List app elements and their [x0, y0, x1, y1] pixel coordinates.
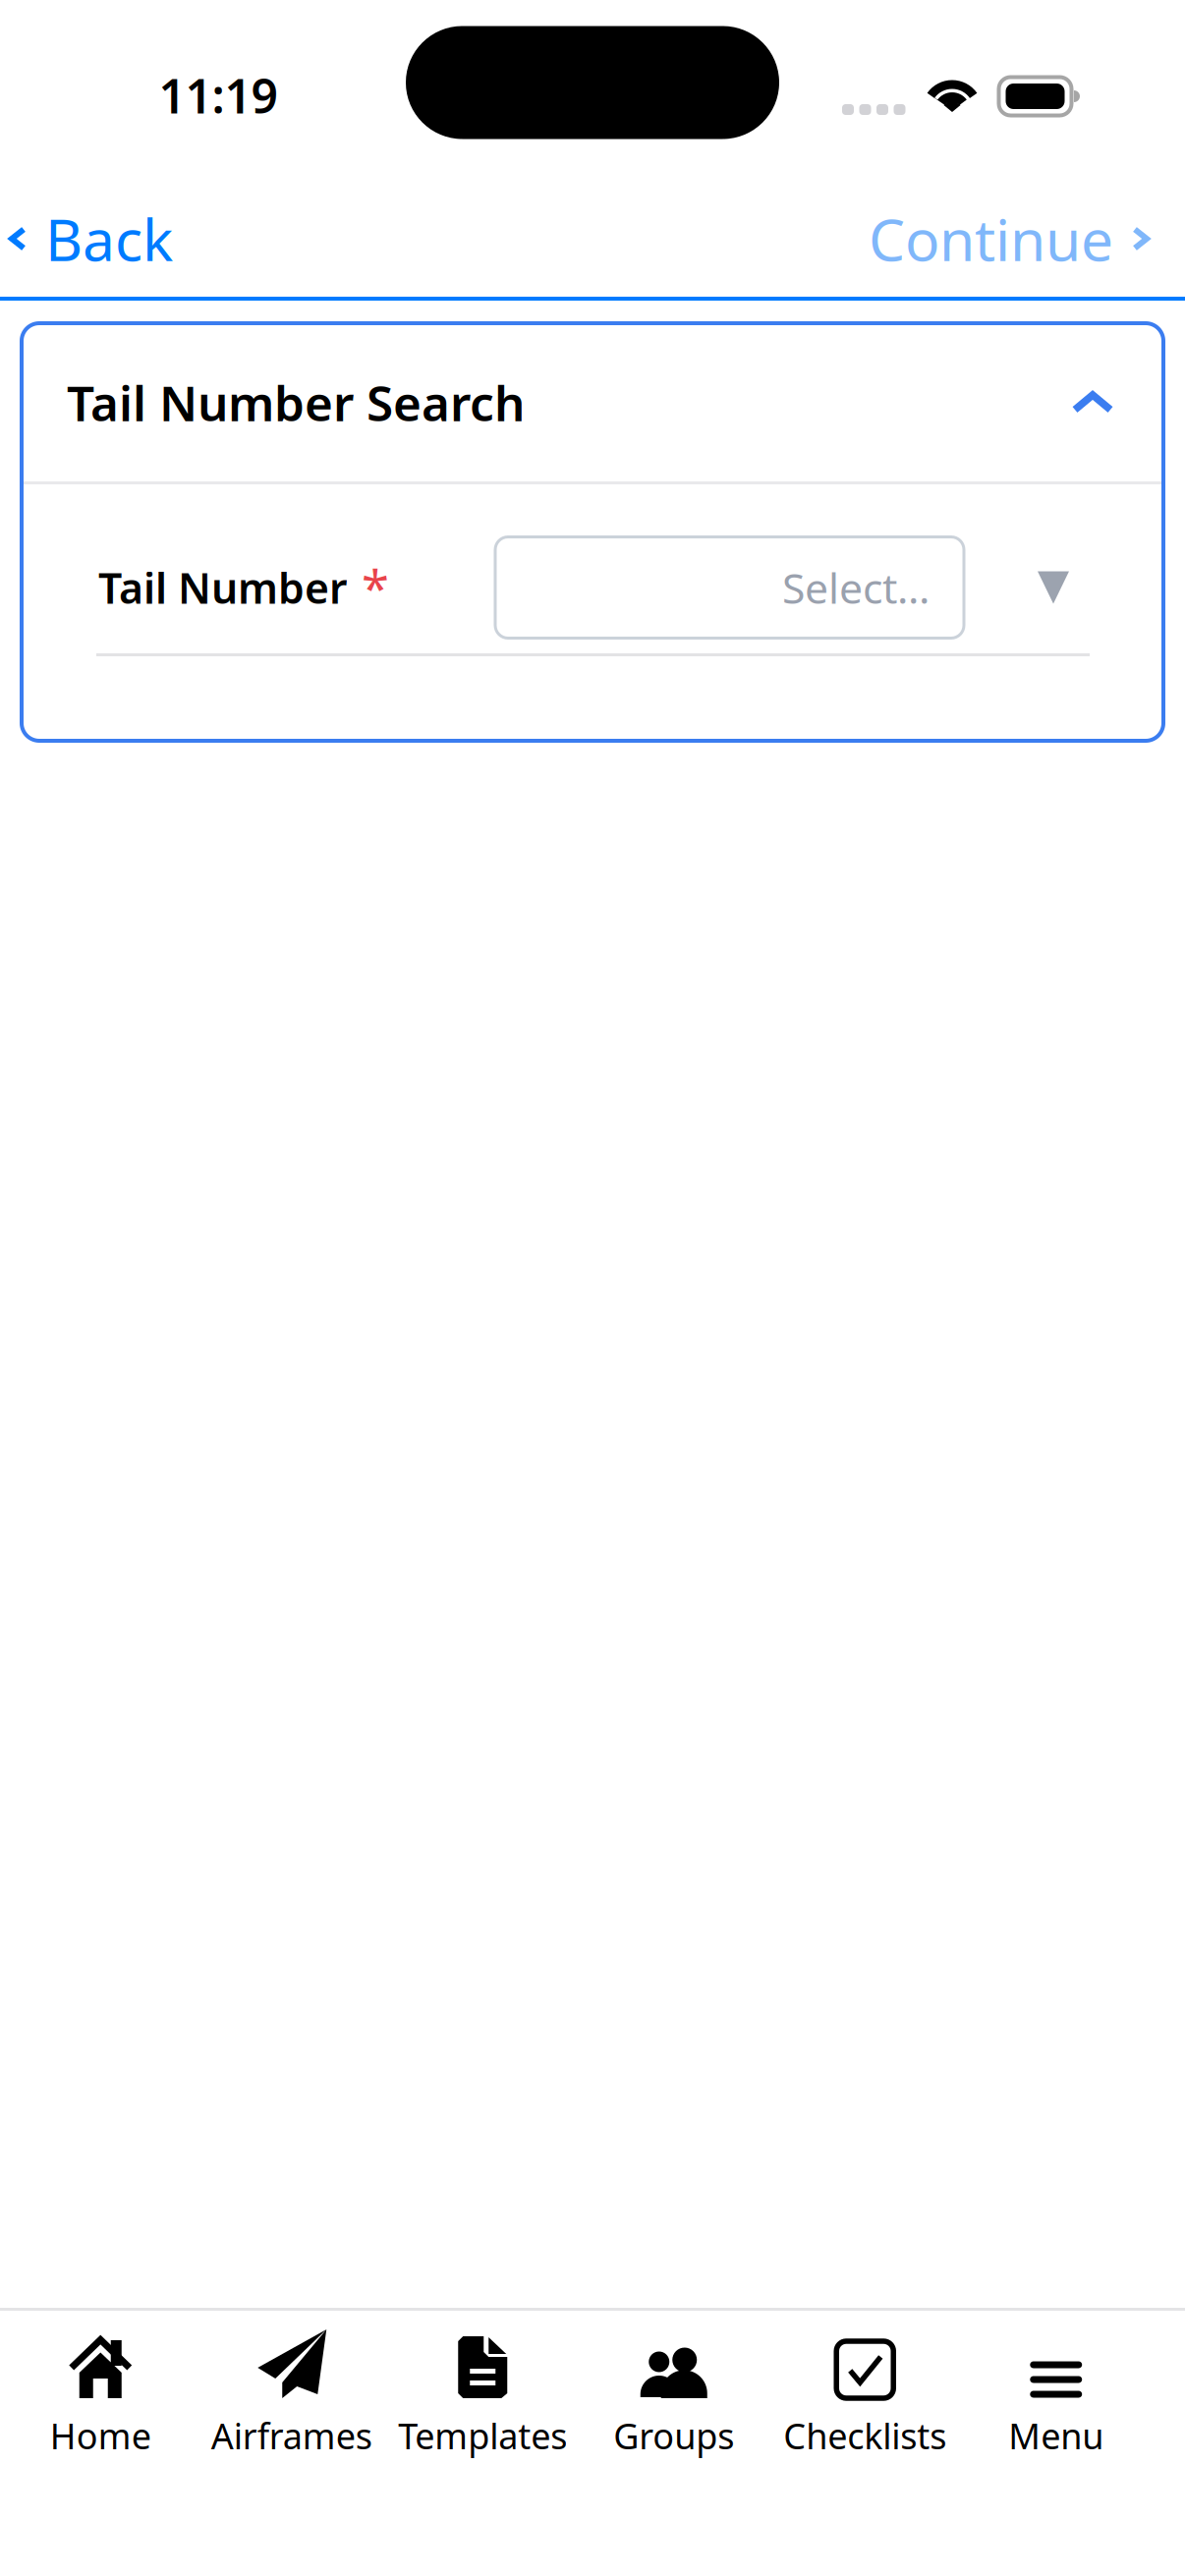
staticText: Home [50, 2412, 151, 2459]
staticText: Back [45, 200, 173, 277]
staticText: Tail Number Search [67, 370, 525, 434]
staticText: 11:19 [159, 64, 278, 127]
staticText: Airframes [211, 2412, 372, 2459]
button[interactable]: Open tail number picker [1008, 537, 1099, 638]
button[interactable]: Menu [960, 2320, 1152, 2477]
staticText: * [362, 554, 389, 621]
staticText: Tail Number [98, 560, 348, 615]
button[interactable]: Checklists [769, 2320, 960, 2477]
staticText: Menu [1008, 2412, 1104, 2459]
button[interactable]: Tail Number Search [22, 323, 1163, 481]
button[interactable]: Templates [387, 2320, 578, 2477]
button[interactable]: Select... [495, 537, 964, 638]
button[interactable]: Groups [578, 2320, 769, 2477]
button[interactable]: Home [5, 2320, 196, 2477]
button[interactable]: Back [0, 165, 198, 297]
staticText: Continue [869, 200, 1113, 277]
staticText: Checklists [783, 2412, 946, 2459]
staticText: Templates [398, 2412, 567, 2459]
button[interactable]: Airframes [196, 2320, 387, 2477]
staticText: Groups [613, 2412, 734, 2459]
staticText: Select... [782, 560, 930, 615]
button[interactable]: Continue [843, 165, 1185, 297]
